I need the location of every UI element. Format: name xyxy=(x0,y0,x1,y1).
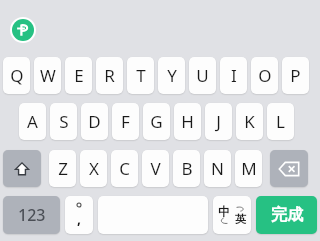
staticText: A xyxy=(27,110,38,133)
button[interactable]: Z xyxy=(49,150,76,187)
button[interactable]: App icon xyxy=(10,17,36,43)
staticText: S xyxy=(59,110,69,133)
button[interactable]: O xyxy=(251,57,278,94)
staticText: Y xyxy=(167,64,177,87)
staticText: L xyxy=(276,110,285,133)
button[interactable]: Punctuation xyxy=(65,196,93,234)
button[interactable]: N xyxy=(204,150,231,187)
button[interactable]: G xyxy=(143,103,170,140)
button[interactable]: Shift xyxy=(3,150,41,187)
button[interactable]: D xyxy=(81,103,108,140)
staticText: 中 xyxy=(218,204,230,219)
staticText: I xyxy=(231,64,237,87)
button[interactable]: Q xyxy=(3,57,30,94)
staticText: P xyxy=(290,64,301,87)
staticText: W xyxy=(40,64,56,87)
staticText: U xyxy=(196,64,209,87)
button[interactable]: Chinese English toggle xyxy=(213,196,251,234)
button[interactable]: F xyxy=(112,103,139,140)
button[interactable]: J xyxy=(205,103,232,140)
button[interactable]: W xyxy=(34,57,61,94)
button[interactable]: S xyxy=(50,103,77,140)
staticText: C xyxy=(119,157,130,180)
button[interactable]: 完成 xyxy=(256,196,317,234)
button[interactable]: 123 xyxy=(3,196,60,234)
button[interactable]: B xyxy=(173,150,200,187)
staticText: T xyxy=(136,64,146,87)
staticText: D xyxy=(88,110,101,133)
button[interactable]: Y xyxy=(158,57,185,94)
staticText: E xyxy=(74,64,84,87)
button[interactable]: K xyxy=(236,103,263,140)
staticText: 英 xyxy=(235,212,246,226)
staticText: J xyxy=(216,110,221,133)
staticText: M xyxy=(241,157,257,180)
staticText: 123 xyxy=(18,204,46,226)
staticText: N xyxy=(211,157,224,180)
button[interactable]: Backspace xyxy=(270,150,308,187)
button[interactable]: T xyxy=(127,57,154,94)
staticText: H xyxy=(181,110,194,133)
button[interactable]: M xyxy=(235,150,262,187)
button[interactable]: L xyxy=(267,103,294,140)
button[interactable]: U xyxy=(189,57,216,94)
staticText: R xyxy=(104,64,115,87)
staticText: K xyxy=(244,110,255,133)
button[interactable]: R xyxy=(96,57,123,94)
button[interactable]: H xyxy=(174,103,201,140)
staticText: V xyxy=(150,157,161,180)
staticText: O xyxy=(258,64,272,87)
staticText: B xyxy=(181,157,193,180)
button[interactable]: E xyxy=(65,57,92,94)
staticText: Q xyxy=(10,64,24,87)
staticText: F xyxy=(121,110,130,133)
staticText: X xyxy=(89,157,99,180)
button[interactable]: I xyxy=(220,57,247,94)
staticText: G xyxy=(150,110,163,133)
button[interactable]: P xyxy=(282,57,309,94)
button[interactable]: V xyxy=(142,150,169,187)
staticText: 完成 xyxy=(271,205,303,225)
staticText: , xyxy=(77,209,81,228)
button[interactable]: C xyxy=(111,150,138,187)
button[interactable]: A xyxy=(19,103,46,140)
staticText: Z xyxy=(58,157,68,180)
button[interactable]: X xyxy=(80,150,107,187)
